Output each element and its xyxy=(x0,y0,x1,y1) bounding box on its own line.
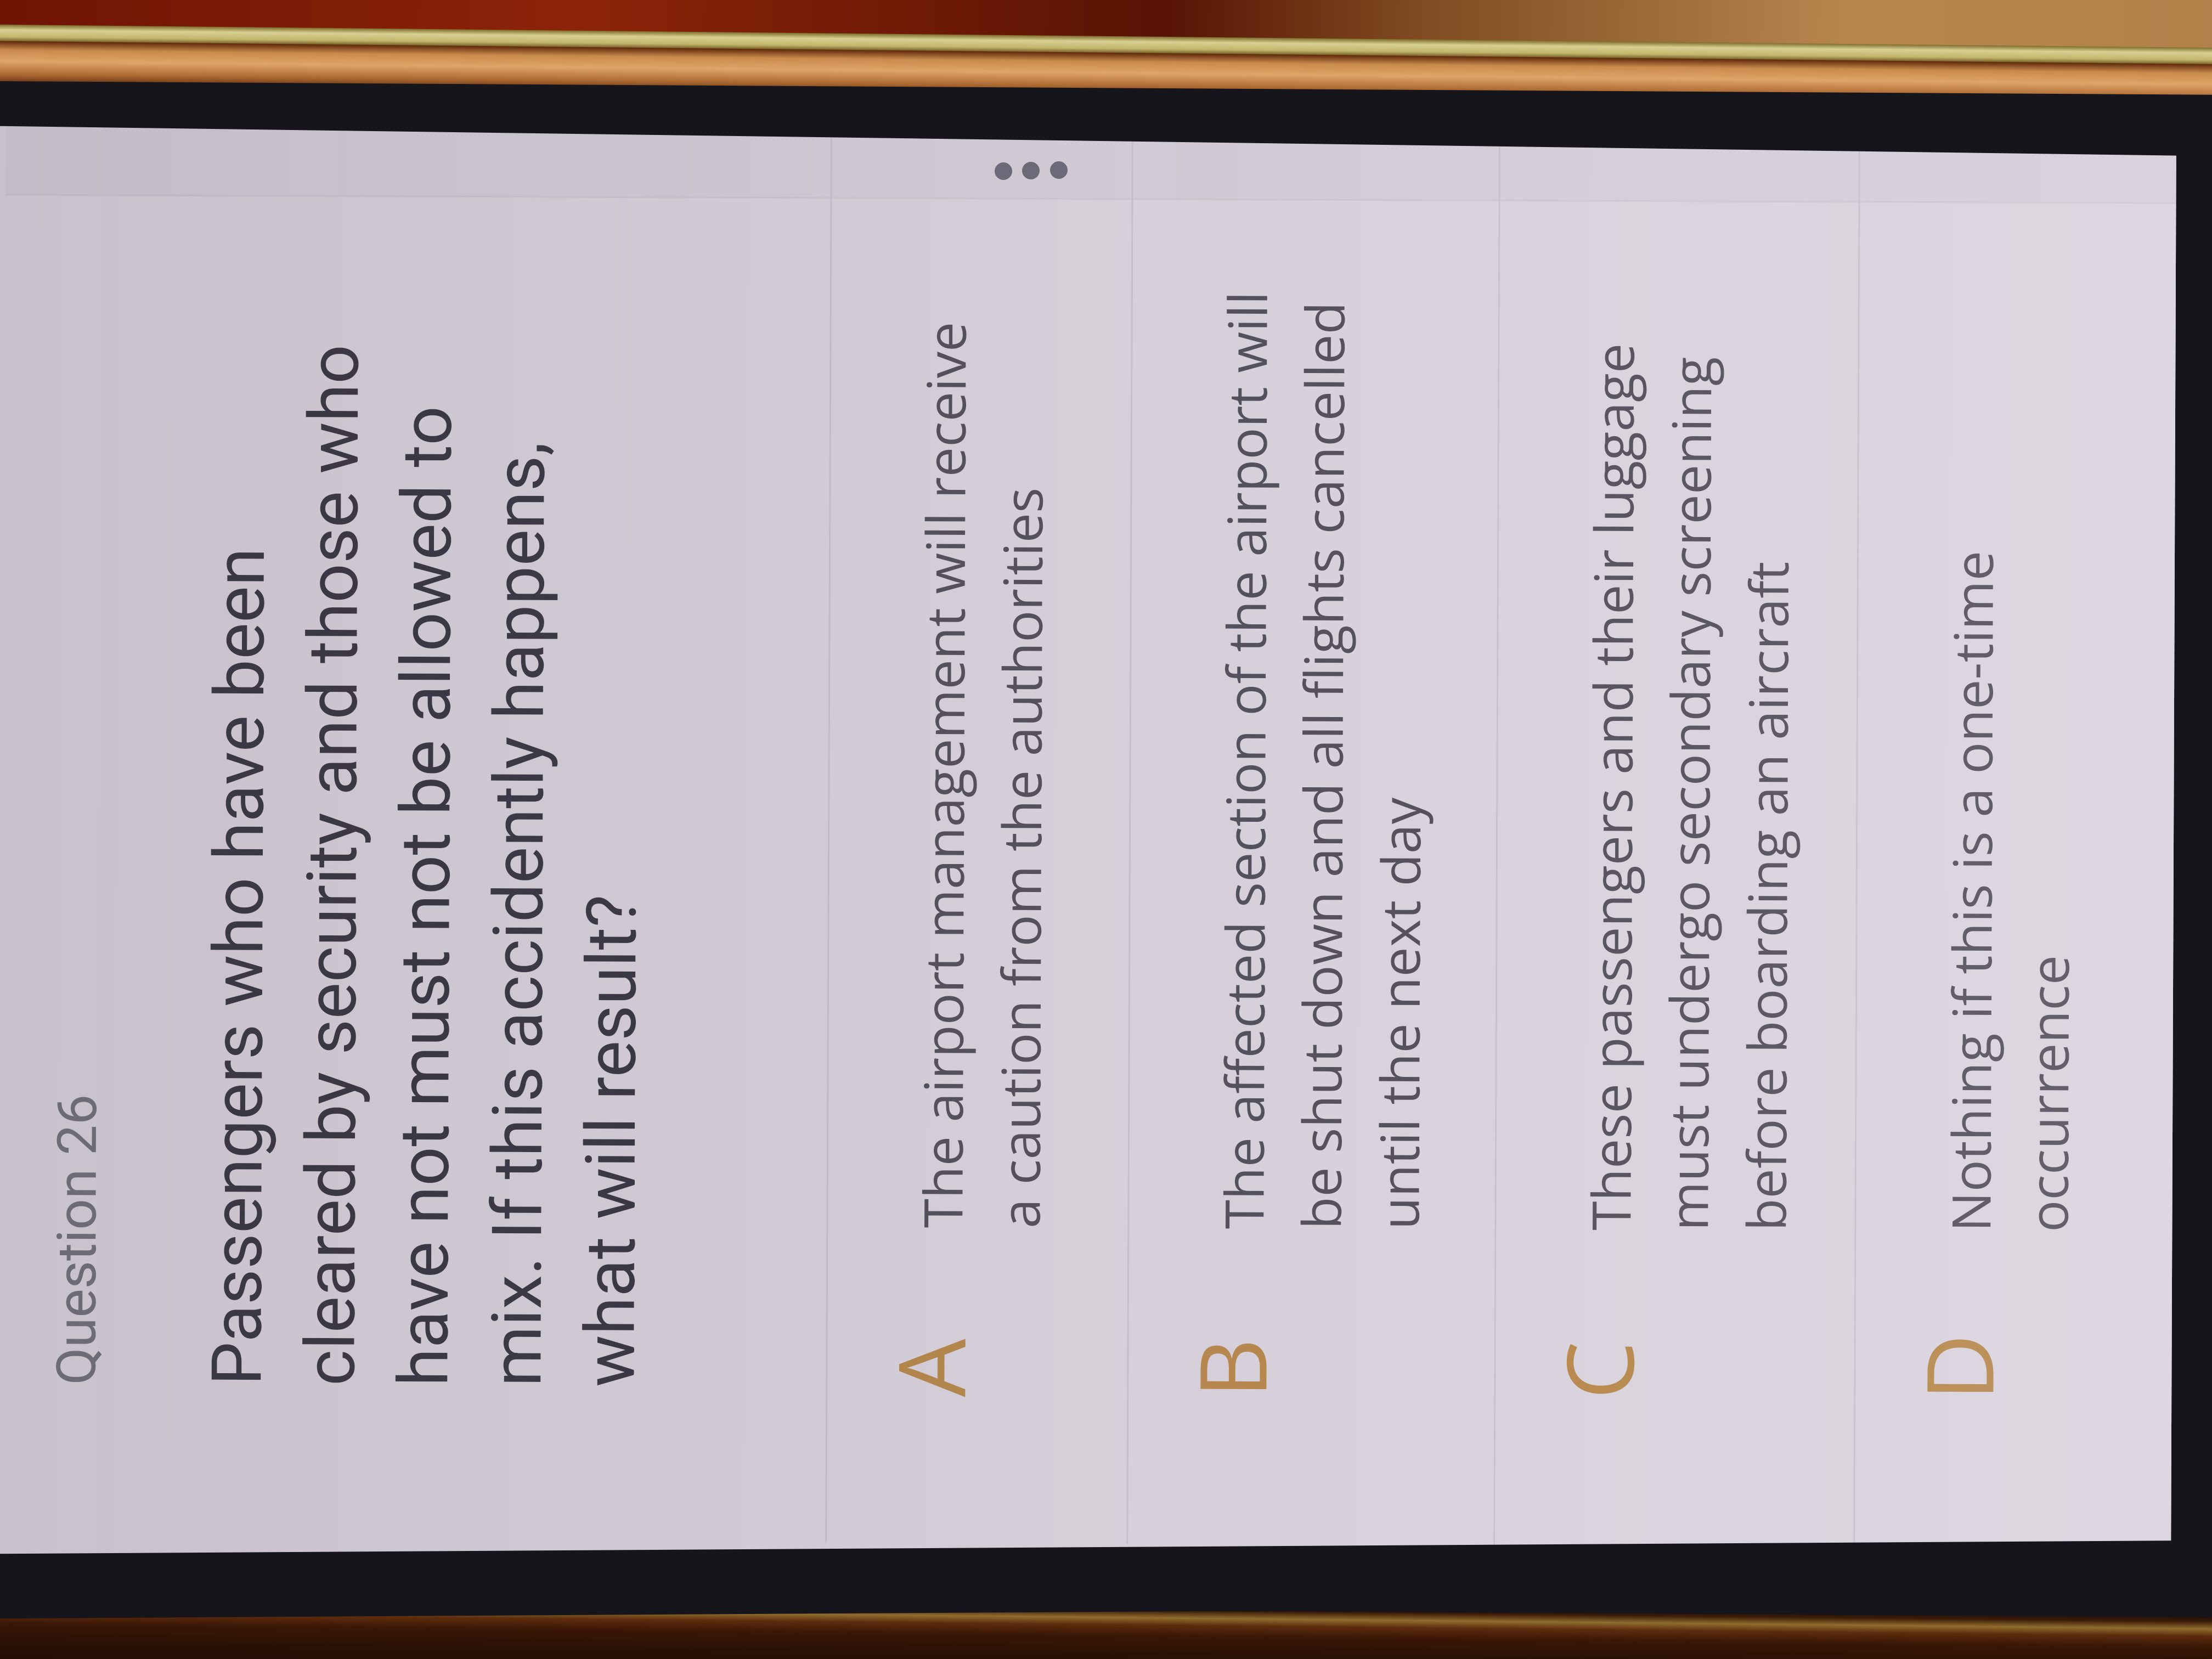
staticText: Nothing if this is a one-time occurrence xyxy=(1933,550,2086,1232)
button[interactable]: B xyxy=(1126,129,1499,1545)
staticText: Passengers who have been cleared by secu… xyxy=(197,344,654,1387)
staticText: B xyxy=(1168,1338,1293,1398)
staticText: These passengers and their luggage must … xyxy=(1574,343,1805,1231)
staticText: Question 26 xyxy=(45,1094,109,1385)
button[interactable]: C xyxy=(1493,131,1859,1547)
button[interactable]: A xyxy=(825,128,1132,1544)
staticText: C xyxy=(1535,1341,1660,1400)
button[interactable]: More options xyxy=(994,160,1076,189)
staticText: The airport management will receive a ca… xyxy=(905,321,1059,1228)
staticText: A xyxy=(866,1338,992,1397)
button[interactable]: D xyxy=(1853,132,2176,1548)
staticText: The affected section of the airport will… xyxy=(1207,291,1438,1230)
staticText: D xyxy=(1894,1334,2020,1401)
